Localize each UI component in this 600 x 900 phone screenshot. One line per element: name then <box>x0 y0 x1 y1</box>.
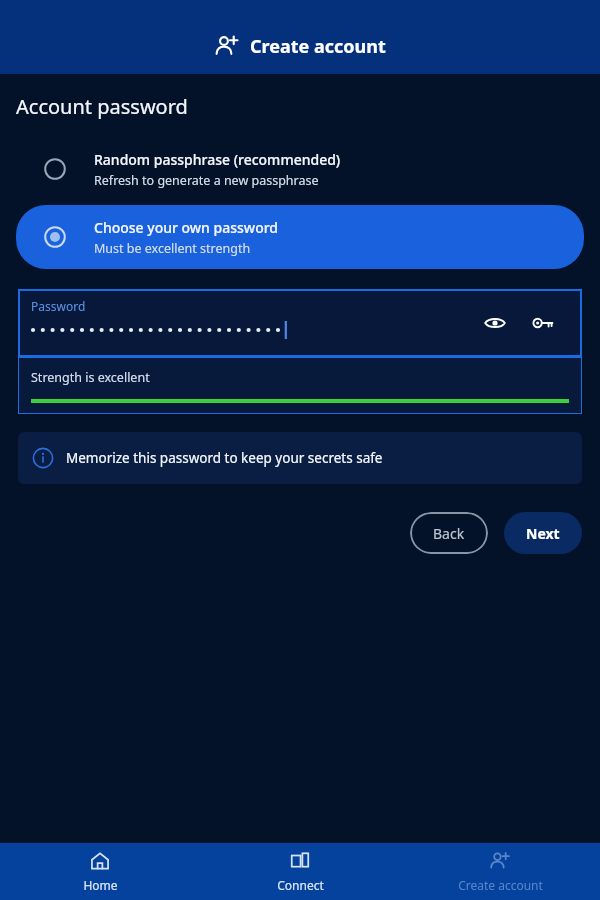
staticText: Connect <box>277 877 324 893</box>
staticText: Back <box>433 524 465 543</box>
button[interactable]: Create account <box>400 843 600 900</box>
button[interactable]: Choose your own password <box>16 205 584 269</box>
staticText: Refresh to generate a new passphrase <box>94 172 319 189</box>
button[interactable]: Home <box>0 843 200 900</box>
staticText: Home <box>83 877 118 893</box>
button[interactable]: Next <box>504 512 582 554</box>
staticText: Random passphrase (recommended) <box>94 150 341 169</box>
button[interactable]: Generate password <box>524 304 562 342</box>
button[interactable]: Back <box>410 512 488 554</box>
staticText: Next <box>526 524 560 543</box>
staticText: Memorize this password to keep your secr… <box>66 449 383 467</box>
staticText: Must be excellent strength <box>94 240 251 257</box>
button[interactable]: Connect <box>200 843 400 900</box>
button[interactable]: Random passphrase (recommended) <box>16 137 584 201</box>
staticText: Strength is excellent <box>31 369 150 386</box>
button[interactable]: Memorize this password to keep your secr… <box>18 432 582 484</box>
button[interactable]: Show password <box>476 304 514 342</box>
staticText: Password <box>31 298 86 314</box>
staticText: Account password <box>16 93 188 120</box>
staticText: Choose your own password <box>94 218 279 237</box>
button[interactable]: Password <box>18 289 582 357</box>
staticText: Create account <box>458 877 543 893</box>
staticText: Create account <box>250 34 386 59</box>
